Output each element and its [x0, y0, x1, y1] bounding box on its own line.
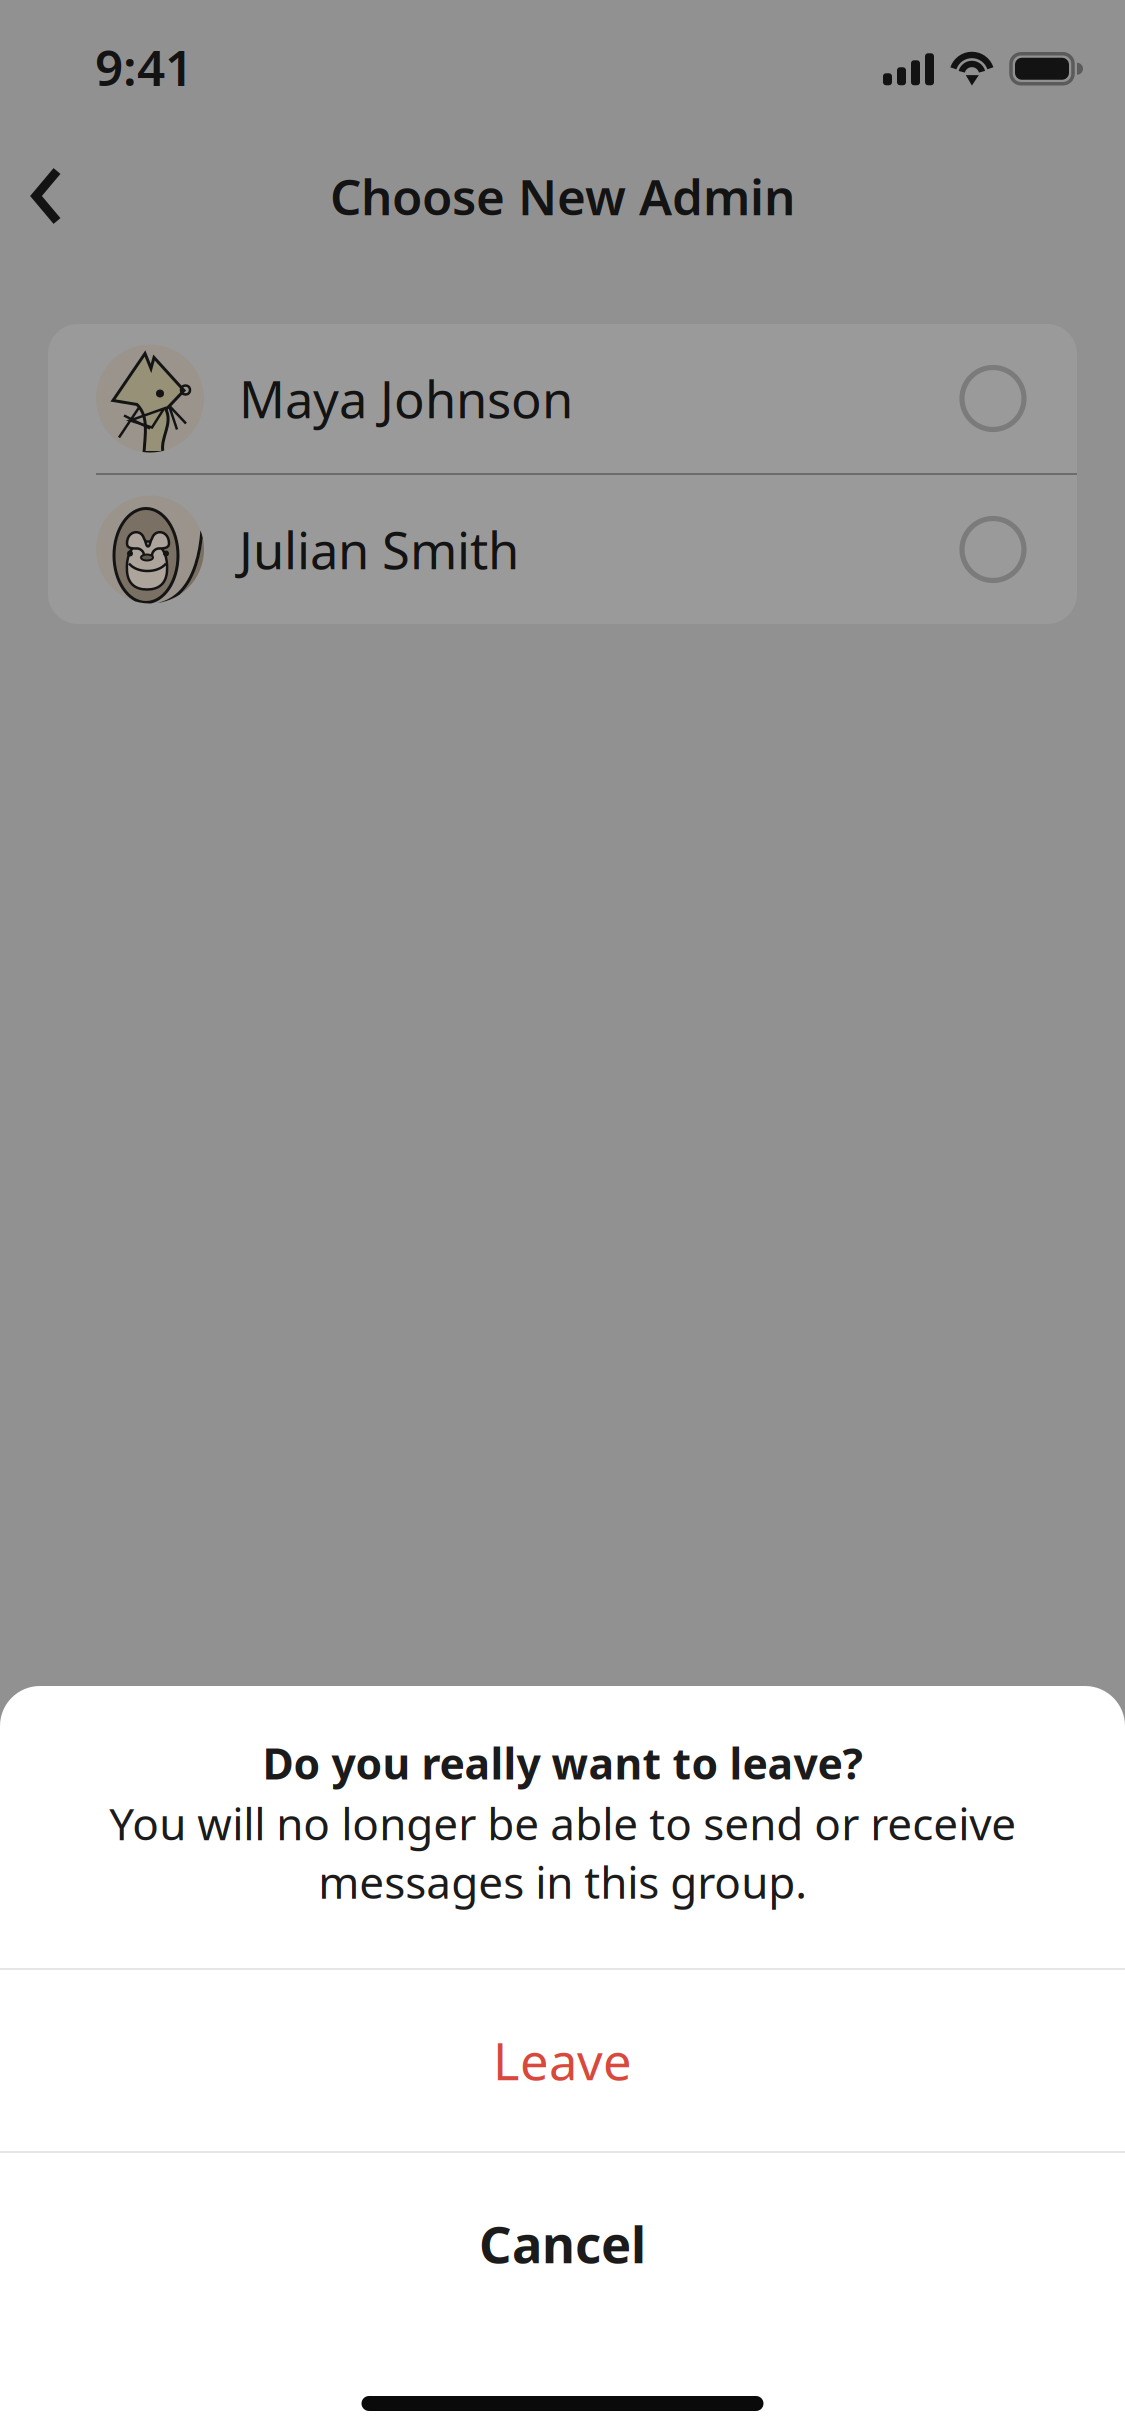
staticText: Julian Smith	[239, 516, 519, 583]
button[interactable]: Cancel	[0, 2153, 1125, 2334]
button[interactable]: Julian Smith	[48, 475, 1077, 624]
button[interactable]: Maya Johnson	[48, 324, 1077, 473]
button[interactable]: Back	[0, 140, 102, 252]
staticText: 9:41	[95, 34, 193, 99]
staticText: Maya Johnson	[239, 365, 573, 432]
staticText: Leave	[493, 2027, 632, 2094]
staticText: Choose New Admin	[330, 163, 795, 229]
staticText: Do you really want to leave?	[262, 1735, 862, 1791]
staticText: You will no longer be able to send or re…	[109, 1794, 1016, 1911]
button[interactable]: Leave	[0, 1970, 1125, 2151]
staticText: Cancel	[479, 2210, 646, 2277]
